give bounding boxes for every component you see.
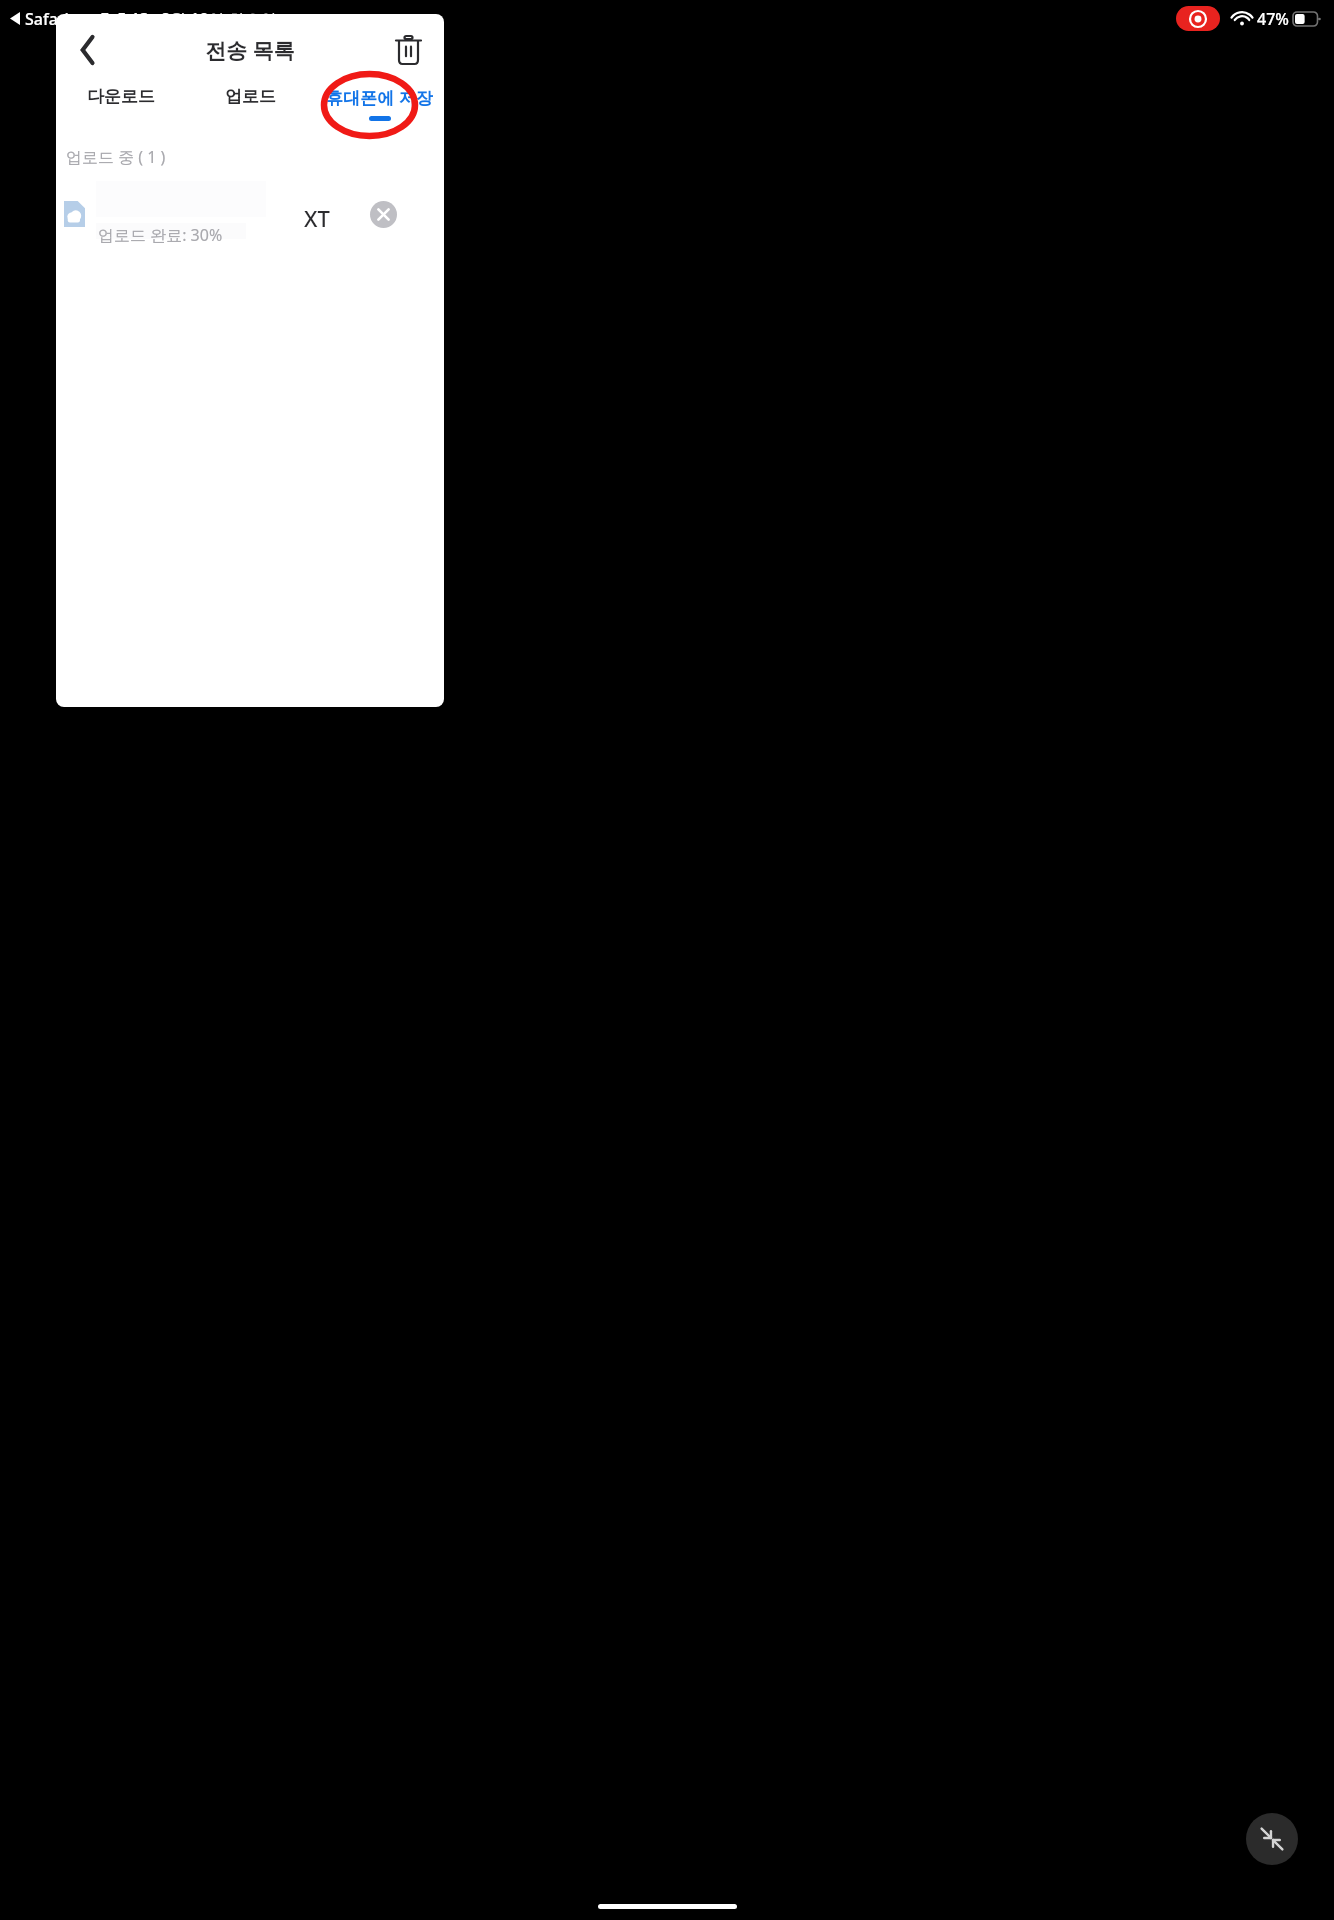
- button[interactable]: Collapse: [1246, 1813, 1298, 1865]
- staticText: 전송 목록: [205, 36, 295, 65]
- button[interactable]: Back: [66, 28, 110, 72]
- staticText: 오후 5:13: [81, 8, 149, 30]
- staticText: Safari: [25, 8, 69, 30]
- staticText: 휴대폰에 저장: [326, 86, 433, 109]
- staticText: 47%: [1257, 8, 1289, 30]
- staticText: 업로드 중 ( 1 ): [66, 146, 166, 168]
- button[interactable]: XT: [56, 179, 444, 255]
- staticText: 8월 10일 화요일: [161, 8, 277, 30]
- staticText: 업로드: [225, 86, 276, 107]
- button[interactable]: Delete: [386, 28, 430, 72]
- staticText: 다운로드: [87, 86, 155, 107]
- button[interactable]: 다운로드: [56, 74, 186, 136]
- staticText: XT: [304, 203, 330, 233]
- button[interactable]: Cancel upload: [368, 199, 398, 229]
- staticText: 업로드 완료: 30%: [98, 224, 223, 246]
- button[interactable]: 휴대폰에 저장: [315, 74, 444, 136]
- button[interactable]: 업로드: [186, 74, 315, 136]
